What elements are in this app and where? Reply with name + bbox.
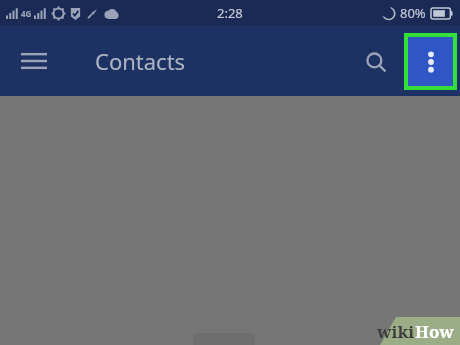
button[interactable]: Search bbox=[352, 38, 400, 86]
staticText: 4G bbox=[21, 8, 32, 19]
staticText: 2:28 bbox=[217, 4, 243, 22]
button[interactable]: Open navigation drawer bbox=[10, 37, 58, 85]
staticText: 80% bbox=[400, 4, 426, 22]
staticText: How bbox=[415, 320, 454, 343]
button[interactable]: More options bbox=[408, 37, 453, 86]
staticText: Contacts bbox=[95, 46, 186, 76]
staticText: wiki bbox=[377, 320, 415, 343]
